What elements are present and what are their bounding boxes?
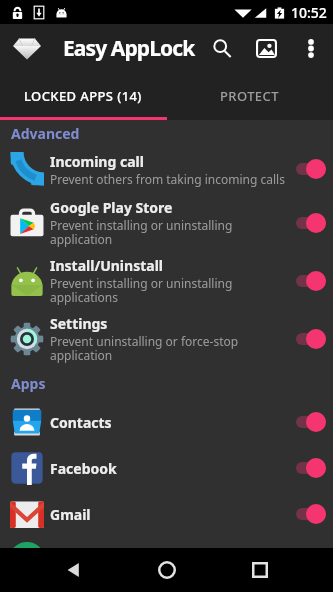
- button[interactable]: Incoming call: [0, 146, 333, 192]
- button[interactable]: Install/Uninstall: [0, 252, 333, 310]
- staticText: PROTECT: [220, 87, 279, 105]
- button[interactable]: Contacts: [0, 399, 333, 445]
- staticText: Gmail: [50, 505, 91, 524]
- staticText: Prevent others from taking incoming call…: [50, 171, 285, 187]
- staticText: Contacts: [50, 413, 112, 432]
- staticText: Facebook: [50, 459, 117, 478]
- staticText: Google Play Store: [50, 198, 173, 217]
- button[interactable]: Google Play Store: [0, 194, 333, 252]
- button[interactable]: LOCKED APPS (14): [0, 72, 166, 120]
- staticText: Easy AppLock: [63, 34, 195, 63]
- button[interactable]: Settings: [0, 310, 333, 368]
- staticText: Prevent installing or uninstalling appli…: [50, 275, 233, 306]
- staticText: LOCKED APPS (14): [24, 87, 142, 105]
- button[interactable]: Google Play Games: [0, 537, 333, 548]
- button[interactable]: Gmail: [0, 491, 333, 537]
- staticText: Apps: [11, 374, 46, 393]
- staticText: Prevent installing or uninstalling appli…: [50, 217, 233, 248]
- button[interactable]: Recents: [237, 548, 283, 592]
- button[interactable]: Facebook: [0, 445, 333, 491]
- button[interactable]: Search: [200, 24, 244, 72]
- staticText: Install/Uninstall: [50, 256, 163, 275]
- button[interactable]: More options: [288, 24, 333, 72]
- staticText: Advanced: [11, 124, 80, 143]
- button[interactable]: Home: [144, 548, 190, 592]
- staticText: Prevent uninstalling or force-stop appli…: [50, 333, 239, 364]
- staticText: Settings: [50, 314, 108, 333]
- button[interactable]: Gallery: [244, 24, 288, 72]
- button[interactable]: PROTECT: [166, 72, 333, 120]
- button[interactable]: Back: [51, 548, 97, 592]
- staticText: Incoming call: [50, 152, 144, 171]
- staticText: 10:52: [291, 3, 327, 22]
